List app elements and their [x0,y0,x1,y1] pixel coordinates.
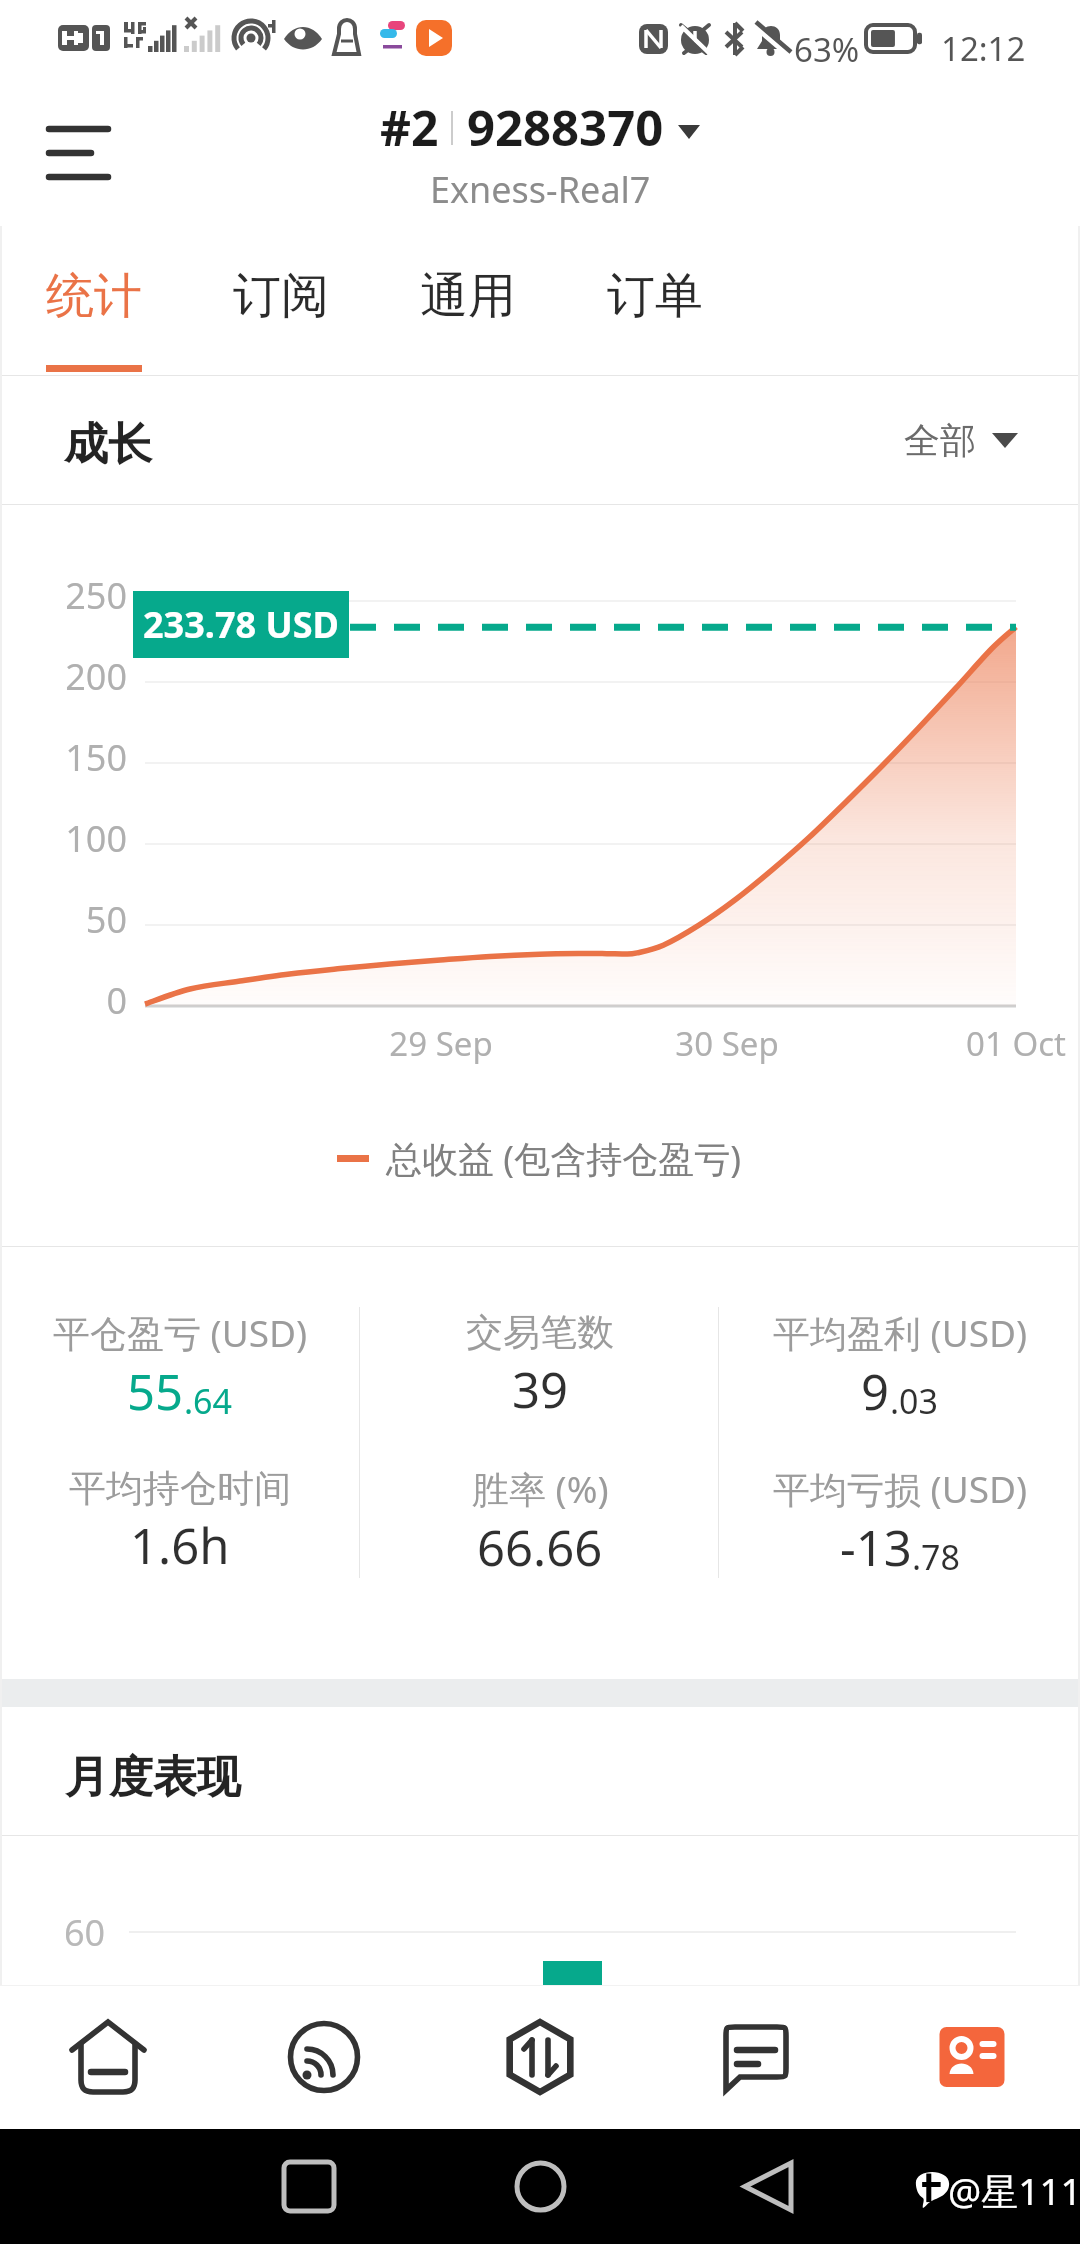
staticText: 9 [861,1358,890,1425]
staticText: 30 Sep [617,1021,837,1066]
staticText: 55 [127,1358,184,1425]
button[interactable]: 通用 [374,225,561,376]
button[interactable]: Menu [19,99,137,217]
staticText: Exness-Real7 [430,165,651,214]
staticText: 统计 [46,266,142,326]
staticText: 200 [0,652,127,701]
staticText: 全部 [904,418,976,463]
staticText: 平均盈利 (USD) [773,1307,1028,1358]
staticText: 39 [512,1356,569,1423]
staticText: @星111 [948,2165,1080,2216]
staticText: 233.78 USD [143,600,339,649]
button[interactable]: 平均盈利 (USD) [720,1288,1080,1444]
staticText: 通用 [420,266,516,326]
staticText: .03 [890,1378,939,1424]
button[interactable]: 订阅 [187,225,374,376]
staticText: 月度表现 [65,1750,241,1805]
button[interactable]: 平均持仓时间 [0,1444,360,1600]
staticText: #2 [380,95,439,160]
staticText: 63% [794,27,860,72]
staticText: 01 Oct [906,1021,1080,1066]
staticText: 12:12 [941,26,1026,71]
button[interactable]: 平均亏损 (USD) [720,1444,1080,1600]
button[interactable]: Home [490,2137,590,2237]
button[interactable]: Accounts [864,1985,1080,2129]
staticText: 总收益 (包含持仓盈亏) [386,1134,741,1183]
button[interactable]: Trade [432,1985,648,2129]
staticText: -13 [840,1514,912,1581]
button[interactable]: 平仓盈亏 (USD) [0,1288,360,1444]
button[interactable]: 全部 [904,418,1018,463]
button[interactable]: Back [718,2137,818,2237]
staticText: 150 [0,733,127,782]
staticText: 50 [64,1974,106,2023]
staticText: 平均持仓时间 [69,1465,291,1512]
staticText: 交易笔数 [466,1309,614,1356]
staticText: .64 [184,1378,233,1424]
staticText: 66.66 [477,1514,603,1581]
button[interactable]: Chat [648,1985,864,2129]
button[interactable]: Home [0,1985,216,2129]
staticText: 订单 [607,266,703,326]
staticText: 订阅 [233,266,329,326]
staticText: 100 [0,814,127,863]
button[interactable]: 交易笔数 [360,1288,720,1444]
staticText: .78 [912,1534,961,1580]
staticText: 60 [64,1908,106,1957]
staticText: 平均亏损 (USD) [773,1463,1028,1514]
staticText: 29 Sep [331,1021,551,1066]
staticText: 胜率 (%) [472,1463,609,1514]
staticText: 0 [0,976,127,1025]
staticText: 1.6h [130,1512,230,1579]
button[interactable]: 统计 [0,225,187,376]
button[interactable]: Recents [259,2137,359,2237]
staticText: 9288370 [467,94,664,161]
staticText: 250 [0,571,127,620]
staticText: 成长 [64,417,152,472]
staticText: 平仓盈亏 (USD) [53,1307,308,1358]
button[interactable]: 胜率 (%) [360,1444,720,1600]
button[interactable]: #2 [380,94,700,214]
button[interactable]: Quotes [216,1985,432,2129]
staticText: 50 [0,895,127,944]
button[interactable]: 订单 [561,225,748,376]
